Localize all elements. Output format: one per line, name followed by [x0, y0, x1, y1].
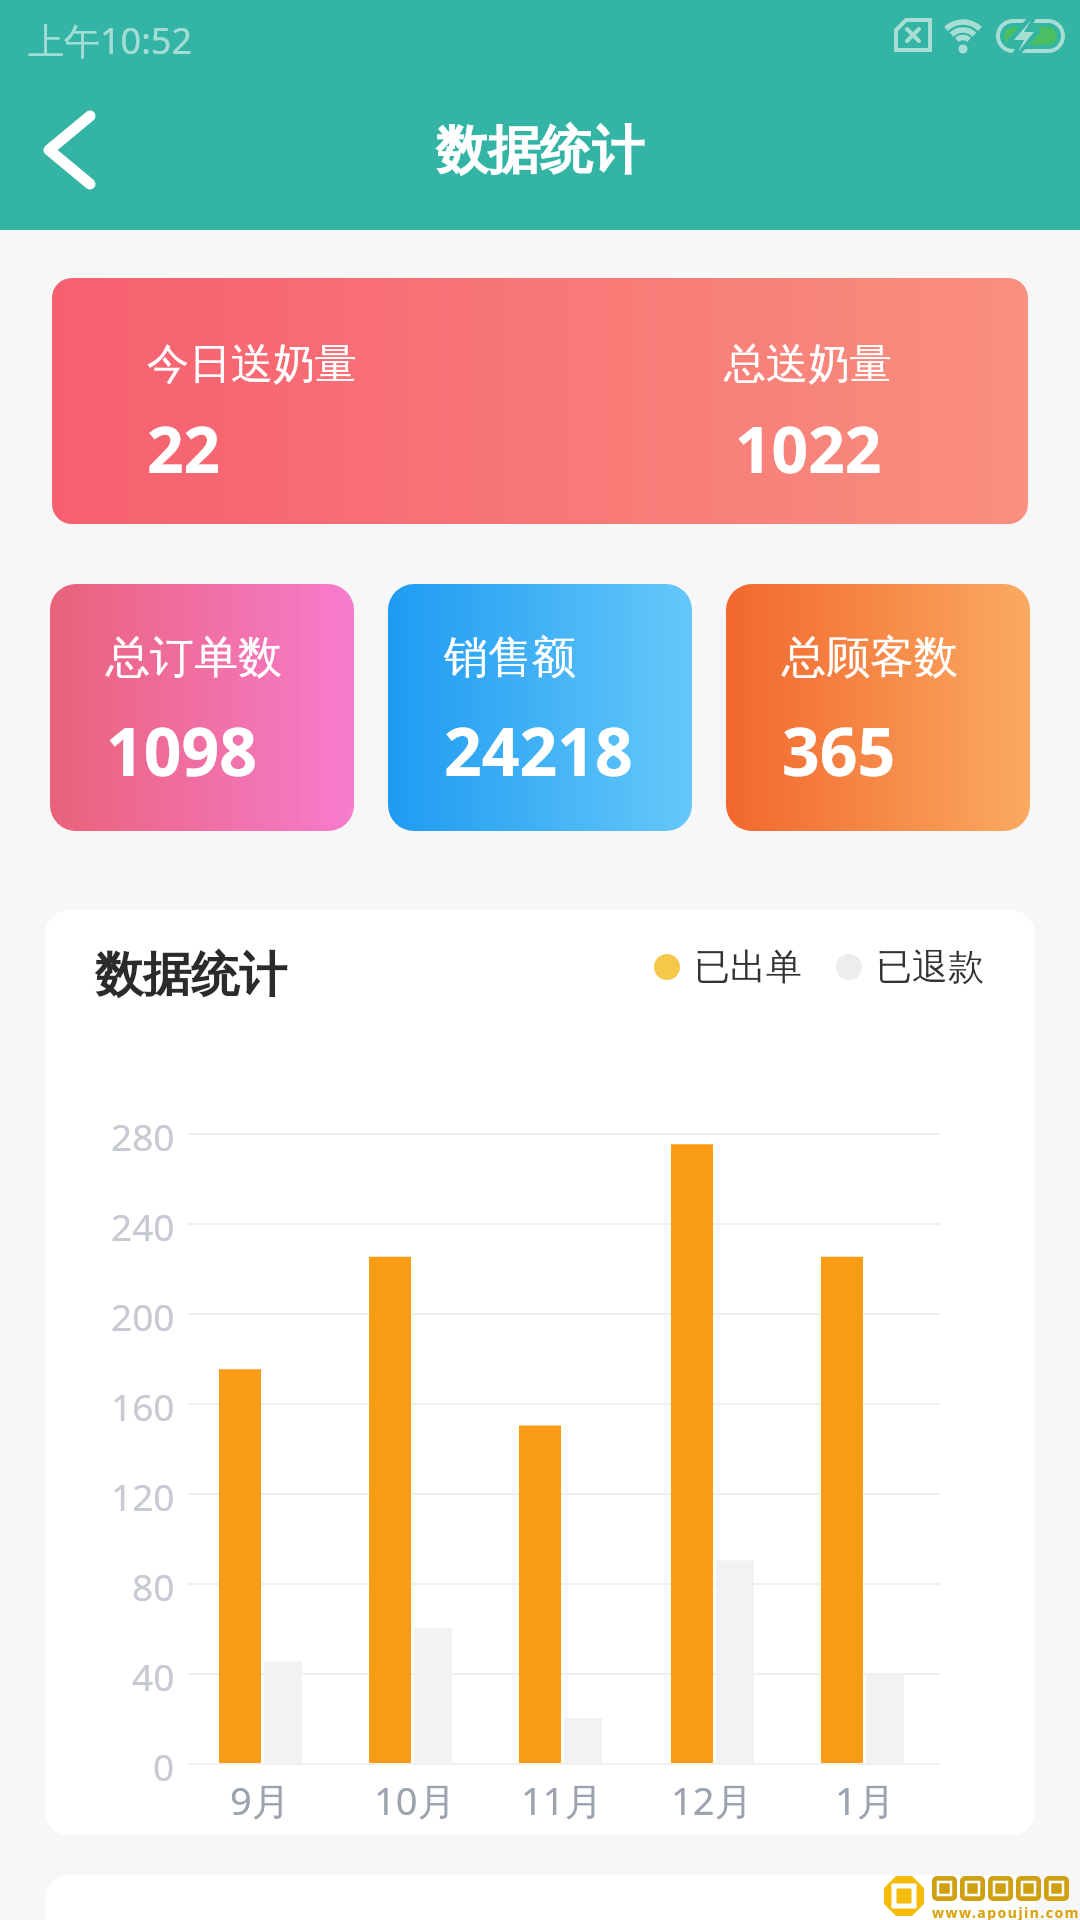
staticText: 总送奶量 — [724, 338, 892, 391]
button[interactable]: 总订单数 — [50, 584, 354, 831]
staticText: 120 — [111, 1471, 175, 1521]
staticText: 1月 — [835, 1774, 895, 1826]
button[interactable]: 今日送奶量 — [52, 278, 1028, 524]
staticText: 销售额 — [444, 630, 576, 685]
staticText: 上午10:52 — [28, 16, 193, 65]
staticText: 240 — [111, 1201, 175, 1251]
staticText: 总顾客数 — [782, 630, 958, 685]
staticText: 数据统计 — [436, 118, 644, 184]
staticText: 1022 — [735, 405, 882, 492]
staticText: 11月 — [521, 1774, 603, 1826]
staticText: 今日送奶量 — [147, 338, 357, 391]
staticText: 24218 — [444, 705, 633, 795]
staticText: www.apoujin.com — [932, 1903, 1080, 1920]
staticText: 200 — [111, 1291, 175, 1341]
staticText: 280 — [111, 1111, 175, 1161]
staticText: 40 — [132, 1651, 175, 1701]
staticText: 10月 — [374, 1774, 456, 1826]
staticText: 9月 — [230, 1774, 290, 1826]
staticText: 数据统计 — [95, 945, 287, 1005]
staticText: 160 — [111, 1381, 175, 1431]
staticText: 0 — [153, 1741, 175, 1791]
staticText: 总订单数 — [106, 630, 282, 685]
staticText: 22 — [147, 405, 221, 492]
button[interactable]: 总顾客数 — [726, 584, 1030, 831]
staticText: 1098 — [106, 705, 258, 795]
button[interactable] — [20, 105, 110, 195]
staticText: 12月 — [671, 1774, 753, 1826]
staticText: 80 — [132, 1561, 175, 1611]
staticText: 已出单 — [694, 944, 802, 989]
staticText: 365 — [782, 705, 896, 795]
button[interactable]: 销售额 — [388, 584, 692, 831]
staticText: 已退款 — [876, 944, 984, 989]
